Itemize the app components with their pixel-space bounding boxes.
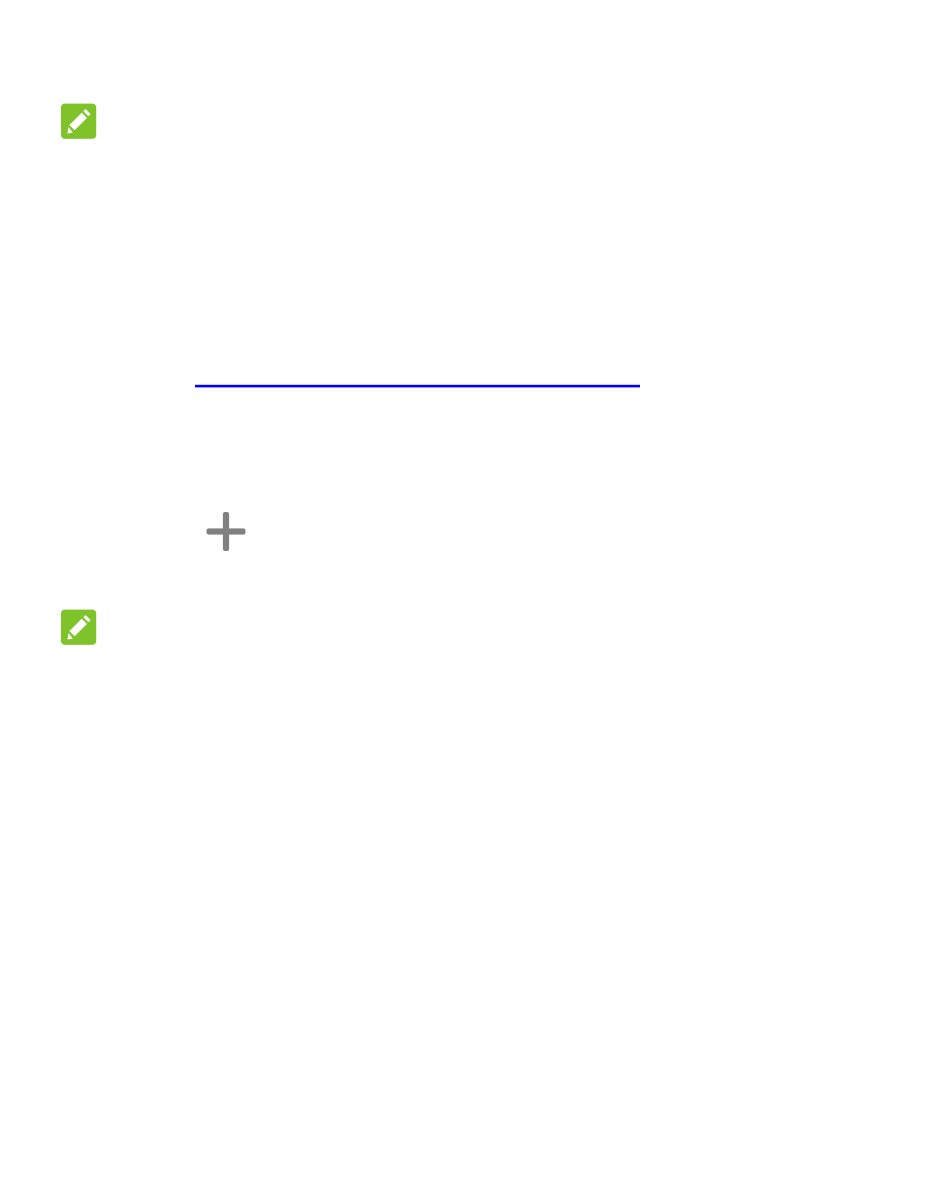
button[interactable]: Edit <box>61 104 96 139</box>
button[interactable]: Edit <box>61 610 96 645</box>
button[interactable]: Add <box>206 512 245 551</box>
